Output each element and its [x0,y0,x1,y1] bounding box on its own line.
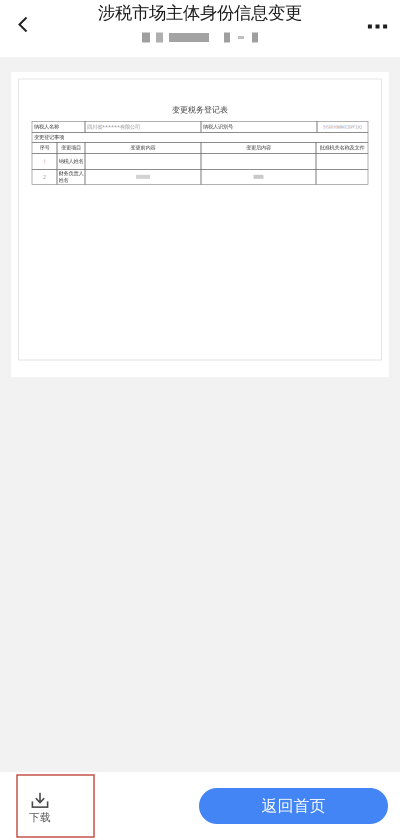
button[interactable]: More options [355,0,400,53]
staticText: 纳税人识别号 [203,124,233,130]
staticText: 序号 [39,145,49,151]
button[interactable]: 返回首页 [199,788,388,824]
button[interactable]: Back [0,0,46,49]
staticText: 915001088ME35PF33Q [323,124,362,129]
staticText: 涉税市场主体身份信息变更 [98,2,302,24]
staticText: 财务负责人 姓名 [58,170,83,183]
staticText: 变更项目 [61,145,81,151]
staticText: 返回首页 [261,796,325,816]
staticText: 变更后内容 [246,145,271,151]
staticText: 批准机关名称及文件 [319,145,364,151]
staticText: 纳税人姓名 [58,158,83,165]
staticText: 1 [43,158,46,165]
staticText: 下载 [29,811,51,824]
staticText: 纳税人名称 [34,124,59,130]
staticText: 变更前内容 [130,145,155,151]
staticText: 四川省******有限公司 [87,123,140,130]
staticText: 变更登记事项 [34,134,64,141]
button[interactable]: 下载 [17,775,94,837]
staticText: 变更税务登记表 [172,105,228,115]
staticText: 2 [43,173,46,180]
